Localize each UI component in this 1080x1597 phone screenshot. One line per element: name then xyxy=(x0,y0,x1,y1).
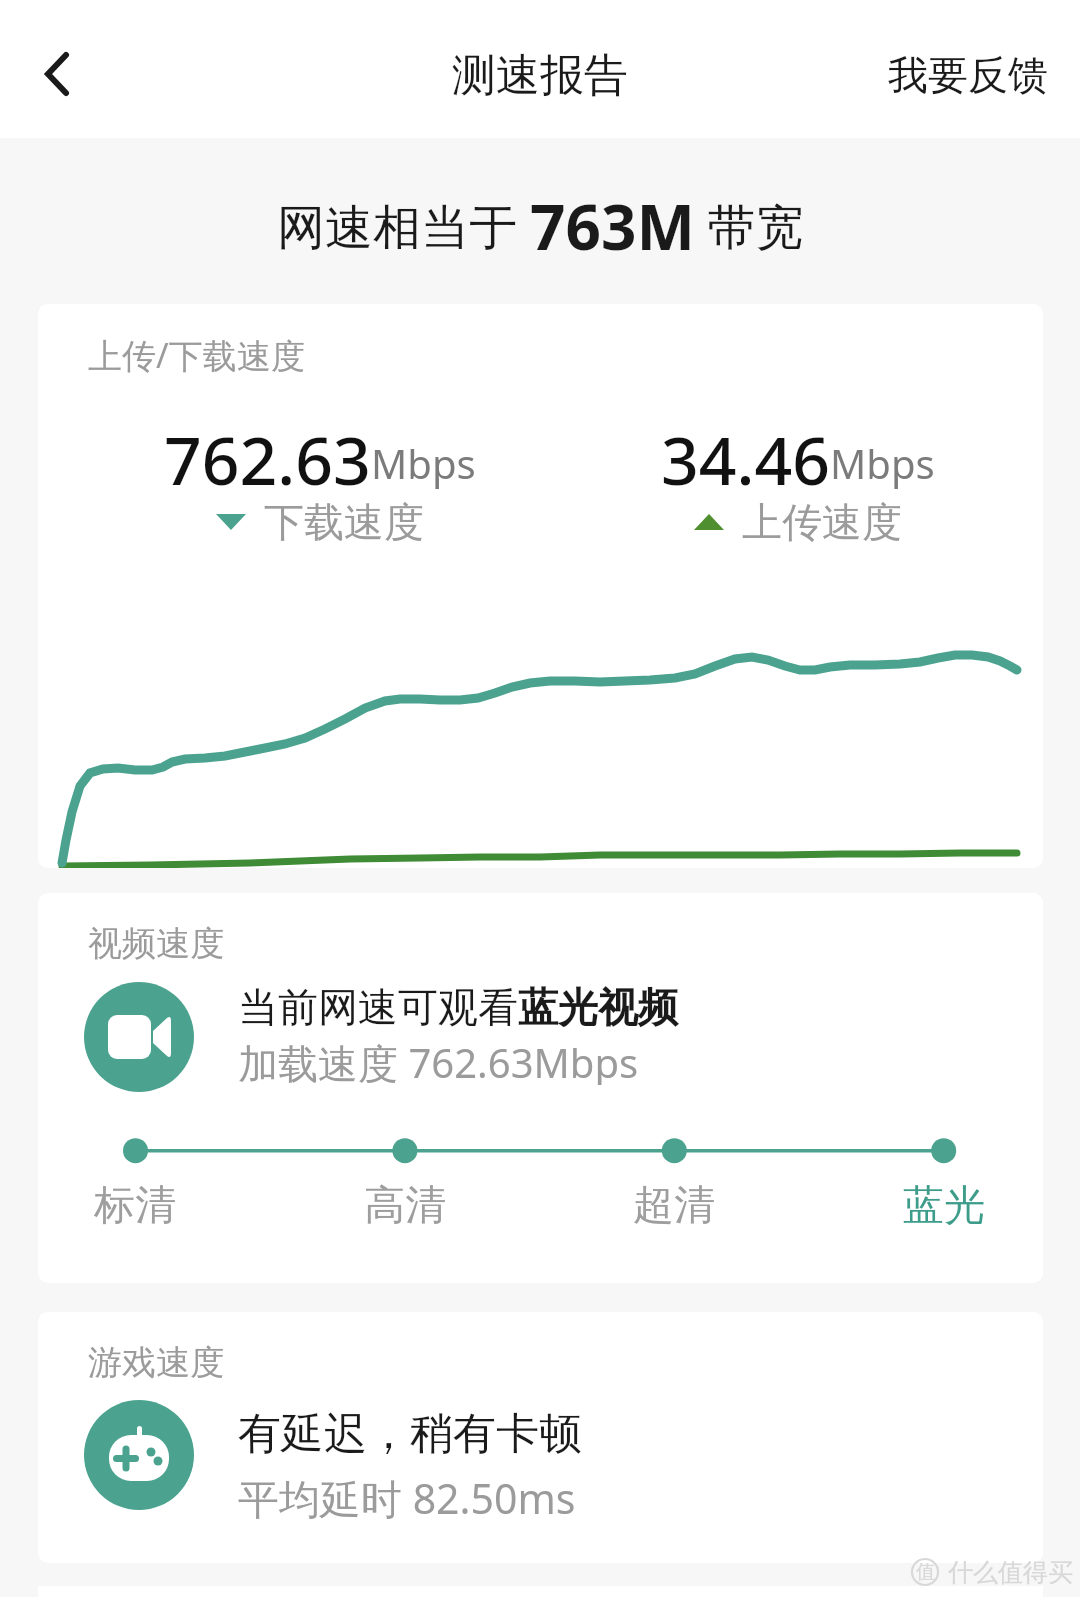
staticText: 我要反馈 xyxy=(888,50,1048,100)
staticText: 带宽 xyxy=(695,193,804,259)
staticText: 34.46 xyxy=(661,414,830,498)
button[interactable]: 蓝光 xyxy=(38,893,198,943)
staticText: Mbps xyxy=(371,436,476,490)
button[interactable]: 标清 xyxy=(38,893,198,943)
staticText: 平均延时 82.50ms xyxy=(238,1470,576,1522)
staticText: 763M xyxy=(530,184,695,268)
staticText: 当前网速可观看蓝光视频 xyxy=(238,982,678,1032)
staticText: 标清 xyxy=(94,1180,176,1230)
staticText: 上传速度 xyxy=(742,497,902,547)
staticText: 加载速度 762.63Mbps xyxy=(238,1035,639,1085)
button[interactable]: 高清 xyxy=(38,893,198,943)
staticText: 高清 xyxy=(364,1180,446,1230)
staticText: 超清 xyxy=(633,1180,715,1230)
button[interactable]: 我要反馈 xyxy=(0,0,176,58)
staticText: 值 xyxy=(916,1560,935,1584)
staticText: 测速报告 xyxy=(452,48,628,103)
staticText: 有延迟，稍有卡顿 xyxy=(238,1407,582,1461)
staticText: 视频速度 xyxy=(88,922,224,965)
staticText: 下载速度 xyxy=(264,497,424,547)
staticText: 什么值得买 xyxy=(948,1557,1073,1588)
button[interactable] xyxy=(28,42,92,106)
button[interactable]: 超清 xyxy=(38,893,198,943)
staticText: 上传/下载速度 xyxy=(88,332,305,376)
staticText: 网速相当于 xyxy=(277,193,530,259)
staticText: 762.63 xyxy=(164,414,371,498)
staticText: 游戏速度 xyxy=(88,1341,224,1384)
staticText: 蓝光 xyxy=(903,1180,985,1230)
staticText: Mbps xyxy=(830,436,935,490)
